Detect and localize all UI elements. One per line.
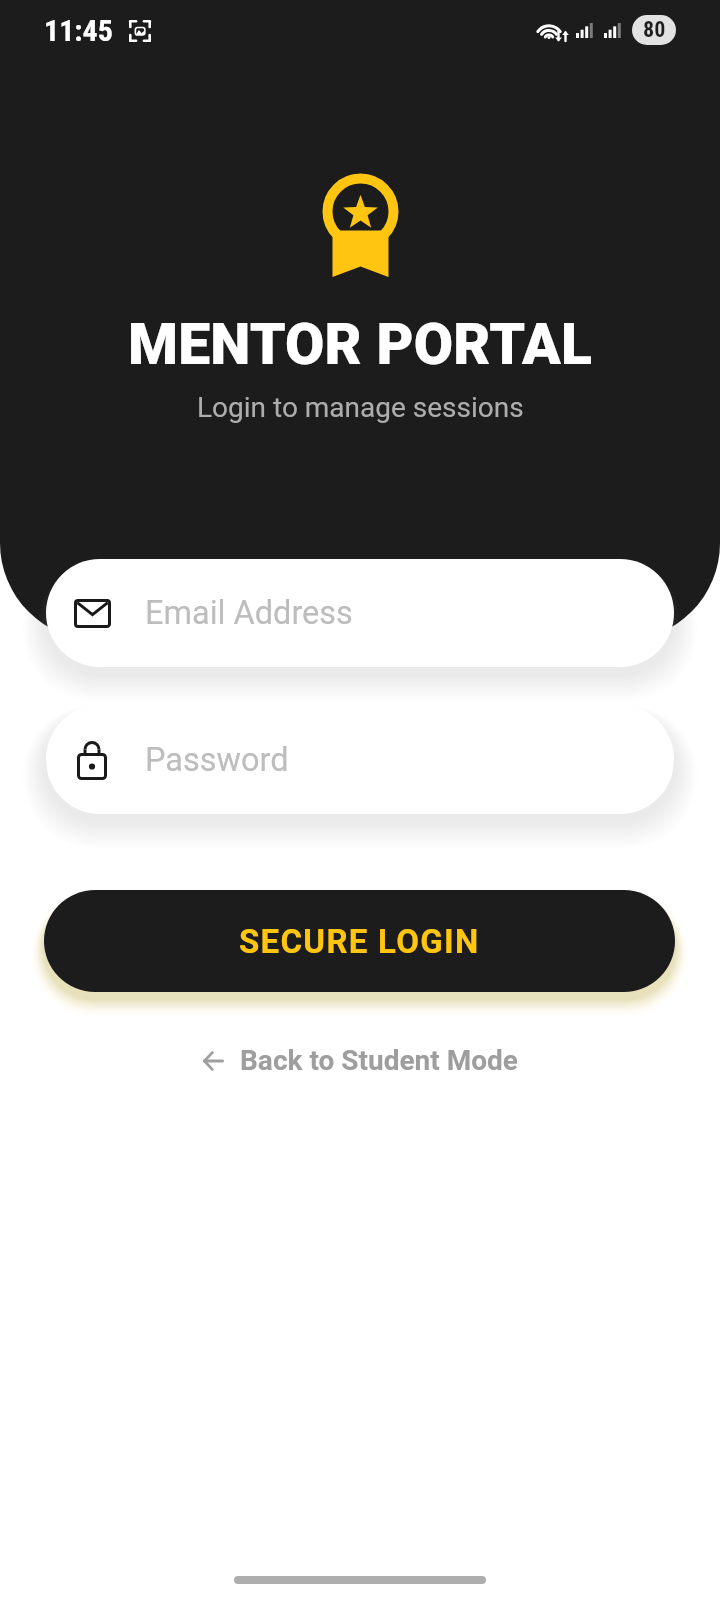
staticText: MENTOR PORTAL <box>128 311 593 378</box>
staticText: Email Address <box>145 594 353 632</box>
staticText: Password <box>145 741 289 779</box>
button[interactable]: Password <box>46 705 674 814</box>
staticText: SECURE LOGIN <box>239 922 480 961</box>
button[interactable]: Email Address <box>46 559 674 667</box>
button[interactable]: Back to Student Mode <box>187 1032 534 1089</box>
staticText: Back to Student Mode <box>240 1044 518 1077</box>
button[interactable]: SECURE LOGIN <box>44 890 675 992</box>
staticText: 80 <box>643 17 666 43</box>
staticText: Login to manage sessions <box>197 391 524 424</box>
staticText: 11:45 <box>44 13 113 48</box>
